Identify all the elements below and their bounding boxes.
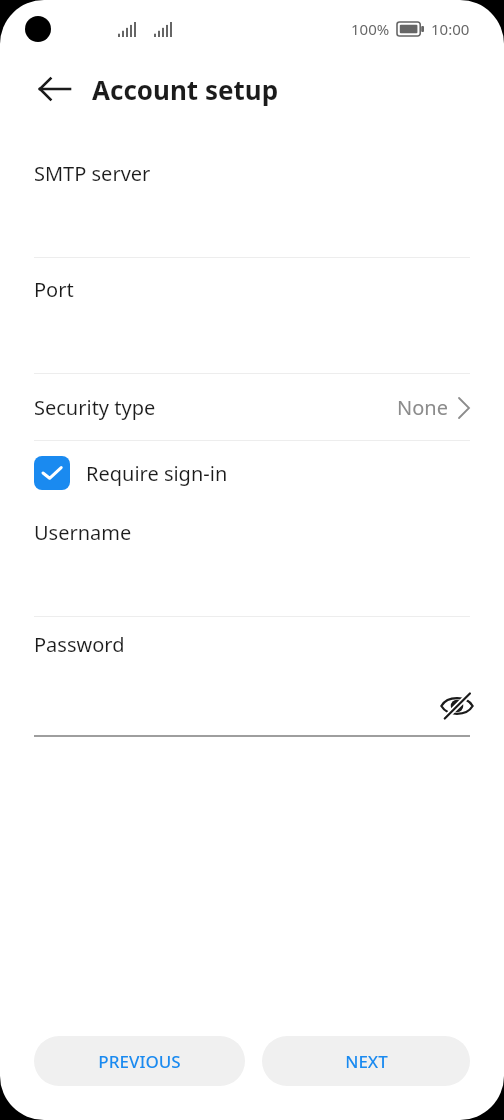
staticText: SMTP server bbox=[34, 160, 151, 187]
button[interactable]: Username bbox=[0, 505, 504, 616]
button[interactable]: Back bbox=[22, 58, 88, 120]
staticText: Username bbox=[34, 519, 132, 546]
button[interactable]: NEXT bbox=[262, 1036, 470, 1086]
button[interactable]: Require sign-in bbox=[0, 441, 504, 505]
staticText: Port bbox=[34, 276, 74, 303]
staticText: Account setup bbox=[92, 72, 279, 107]
staticText: Security type bbox=[34, 394, 156, 421]
staticText: Require sign-in bbox=[86, 460, 228, 487]
button[interactable]: PREVIOUS bbox=[34, 1036, 245, 1086]
button[interactable]: Port bbox=[0, 258, 504, 373]
button[interactable]: SMTP server bbox=[0, 142, 504, 257]
staticText: NEXT bbox=[345, 1050, 388, 1073]
staticText: 10:00 bbox=[431, 19, 470, 39]
staticText: PREVIOUS bbox=[98, 1050, 181, 1073]
staticText: 100% bbox=[351, 19, 390, 39]
staticText: Password bbox=[34, 631, 125, 658]
button[interactable]: Show password bbox=[434, 683, 480, 729]
staticText: None bbox=[397, 394, 448, 421]
button[interactable]: Security type bbox=[0, 374, 504, 440]
